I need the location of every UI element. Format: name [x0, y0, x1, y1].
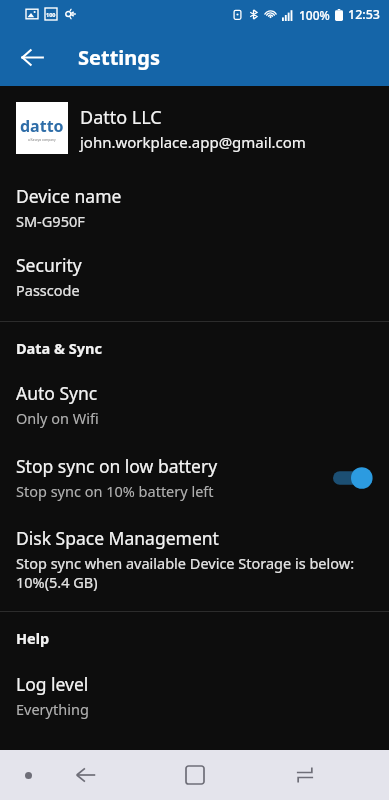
staticText: Stop sync on low battery [16, 454, 218, 478]
staticText: Everything [16, 699, 89, 719]
staticText: Disk Space Management [16, 526, 219, 550]
button[interactable]: Back [64, 753, 108, 797]
staticText: Data & Sync [16, 338, 102, 358]
staticText: 100% [299, 7, 330, 23]
staticText: Security [16, 253, 82, 277]
staticText: Help [16, 628, 50, 648]
button[interactable]: datto [0, 86, 389, 162]
button[interactable]: Log level [0, 672, 389, 719]
staticText: SM-G950F [16, 211, 85, 231]
staticText: 100 [46, 11, 56, 18]
staticText: Stop sync on 10% battery left [16, 481, 214, 501]
staticText: Log level [16, 672, 89, 696]
staticText: Stop sync when available Device Storage … [16, 553, 355, 592]
staticText: Only on Wifi [16, 408, 99, 428]
button[interactable]: Menu dot [14, 761, 42, 789]
button[interactable]: Auto Sync [0, 381, 389, 428]
staticText: Datto LLC [80, 105, 162, 130]
button[interactable]: Back [12, 37, 52, 77]
button[interactable]: Home [173, 753, 217, 797]
staticText: Settings [78, 44, 160, 71]
staticText: Auto Sync [16, 381, 98, 405]
button[interactable]: Security [0, 253, 389, 300]
button[interactable]: Disk Space Management [0, 526, 389, 592]
staticText: Passcode [16, 280, 80, 300]
staticText: john.workplace.app@gmail.com [80, 132, 306, 152]
staticText: datto [20, 115, 64, 137]
staticText: 12:53 [348, 6, 381, 23]
staticText: a Kaseya company [28, 138, 56, 142]
button[interactable]: Recents [283, 753, 327, 797]
button[interactable]: Device name [0, 184, 389, 231]
staticText: Device name [16, 184, 122, 208]
button[interactable]: Stop sync on low battery [0, 454, 389, 501]
